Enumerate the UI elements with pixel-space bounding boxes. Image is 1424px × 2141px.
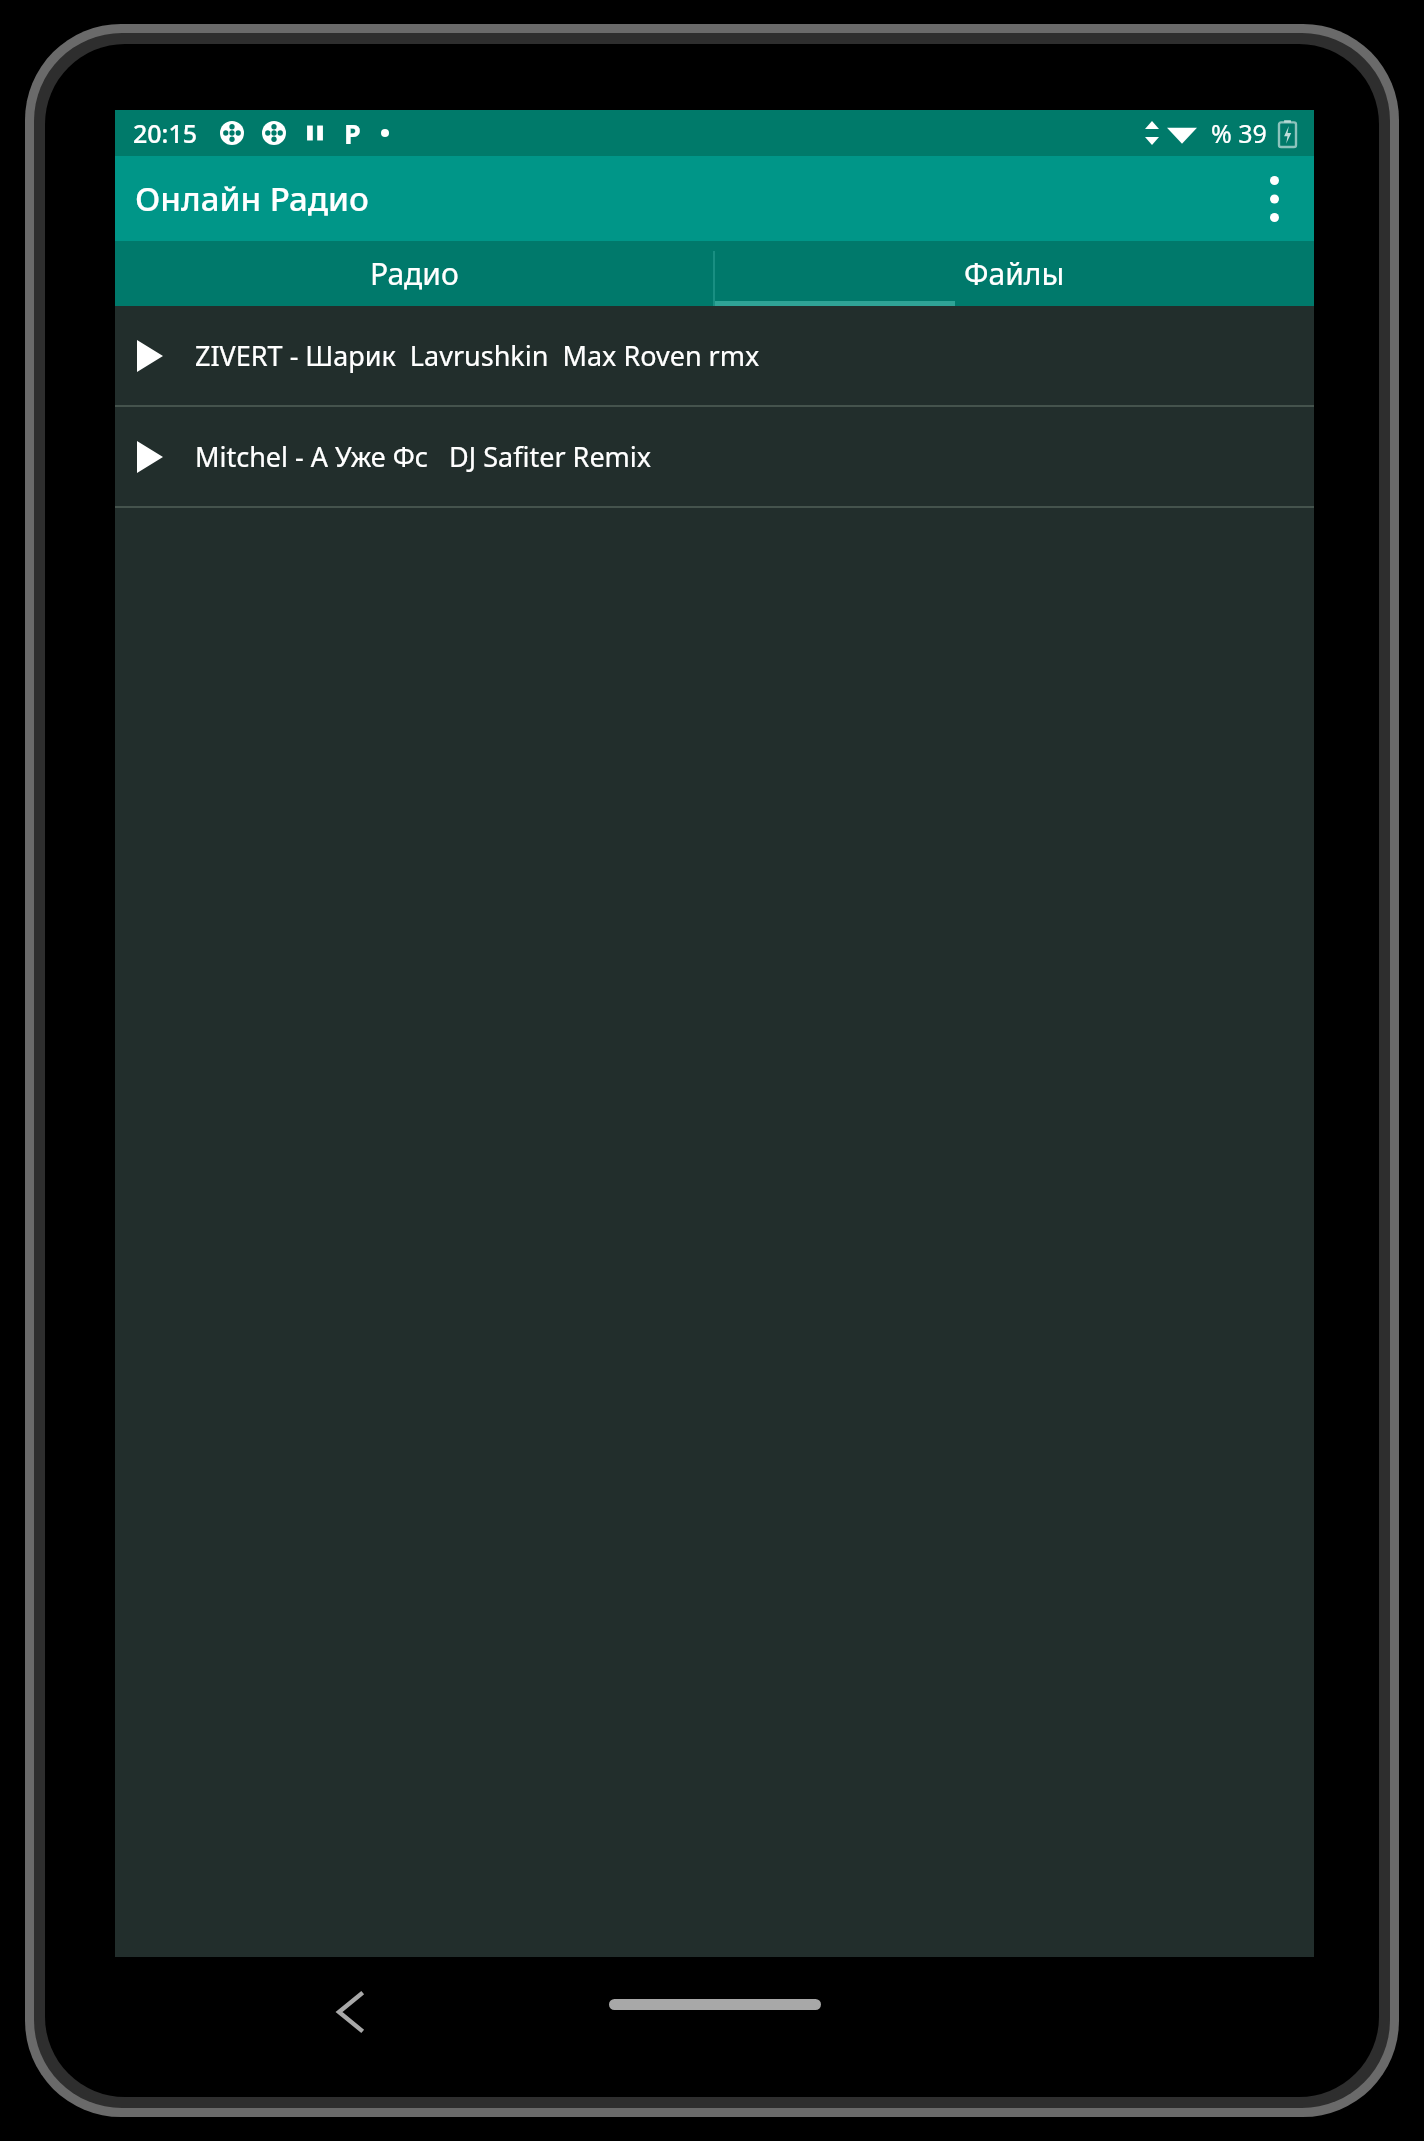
staticText: Mitchel - А Уже Фс DJ Safiter Remix bbox=[195, 438, 652, 475]
staticText: % 39 bbox=[1211, 116, 1267, 150]
staticText: Файлы bbox=[964, 253, 1065, 294]
staticText: Радио bbox=[370, 253, 459, 294]
button[interactable]: Home bbox=[609, 1999, 821, 2010]
button[interactable]: Mitchel - А Уже Фс DJ Safiter Remix bbox=[115, 407, 1314, 506]
staticText: ZIVERT - Шарик Lavrushkin Max Roven rmx bbox=[195, 337, 760, 374]
button[interactable]: Back bbox=[305, 1967, 395, 2057]
button[interactable]: More options bbox=[1234, 156, 1314, 241]
staticText: 20:15 bbox=[133, 116, 198, 150]
staticText: Онлайн Радио bbox=[135, 176, 369, 221]
button[interactable]: Радио bbox=[115, 241, 714, 306]
button[interactable]: ZIVERT - Шарик Lavrushkin Max Roven rmx bbox=[115, 306, 1314, 405]
button[interactable]: Файлы bbox=[714, 241, 1314, 306]
staticText: P bbox=[344, 115, 361, 152]
